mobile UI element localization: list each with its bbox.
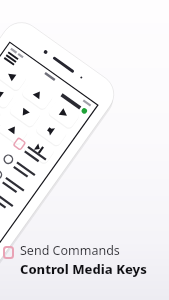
- other: App icon: [3, 246, 14, 259]
- staticText: Send Commands: [20, 242, 120, 259]
- button[interactable]: App icon: [3, 242, 147, 278]
- staticText: Control Media Keys: [20, 260, 147, 278]
